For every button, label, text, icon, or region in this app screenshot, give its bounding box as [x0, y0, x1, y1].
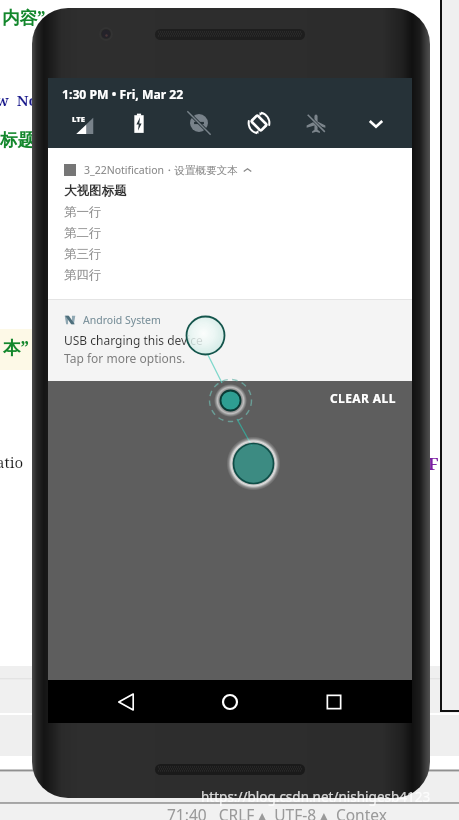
staticText: w No: [0, 90, 38, 110]
staticText: atio: [0, 452, 24, 472]
staticText: CLEAR ALL: [330, 390, 396, 406]
button[interactable]: Do not disturb: [186, 110, 212, 136]
staticText: https://blog.csdn.net/nishigesb4123: [201, 788, 431, 806]
button[interactable]: Expand: [363, 110, 389, 136]
button[interactable]: Auto rotate: [246, 110, 272, 136]
button[interactable]: Recent apps: [316, 684, 352, 720]
staticText: 标题: [0, 129, 35, 151]
button[interactable]: Back: [108, 684, 144, 720]
staticText: 内容”: [2, 5, 46, 29]
button[interactable]: Airplane mode: [303, 110, 329, 136]
staticText: 第三行: [64, 246, 102, 262]
staticText: LTE: [72, 114, 85, 124]
button[interactable]: Home: [212, 684, 248, 720]
staticText: 第一行: [64, 204, 102, 220]
button[interactable]: Battery: [126, 110, 152, 136]
staticText: 本”: [3, 335, 30, 359]
staticText: 第四行: [64, 267, 102, 283]
button[interactable]: Signal: [68, 110, 94, 136]
staticText: Tap for more options.: [64, 350, 186, 366]
staticText: 3_22Notification・设置概要文本: [84, 163, 238, 177]
staticText: F: [428, 452, 439, 475]
staticText: 第二行: [64, 225, 102, 241]
button[interactable]: CLEAR ALL: [310, 385, 412, 419]
staticText: 1:30 PM • Fri, Mar 22: [62, 86, 184, 103]
staticText: 71:40 CRLF ▴ UTF-8 ▴ Contex: [167, 804, 387, 820]
staticText: 大视图标题: [64, 183, 127, 199]
staticText: Android System: [83, 313, 161, 327]
button[interactable]: 3_22Notification・设置概要文本: [48, 148, 412, 299]
staticText: USB charging this device: [64, 332, 203, 348]
button[interactable]: Android System: [48, 300, 412, 381]
